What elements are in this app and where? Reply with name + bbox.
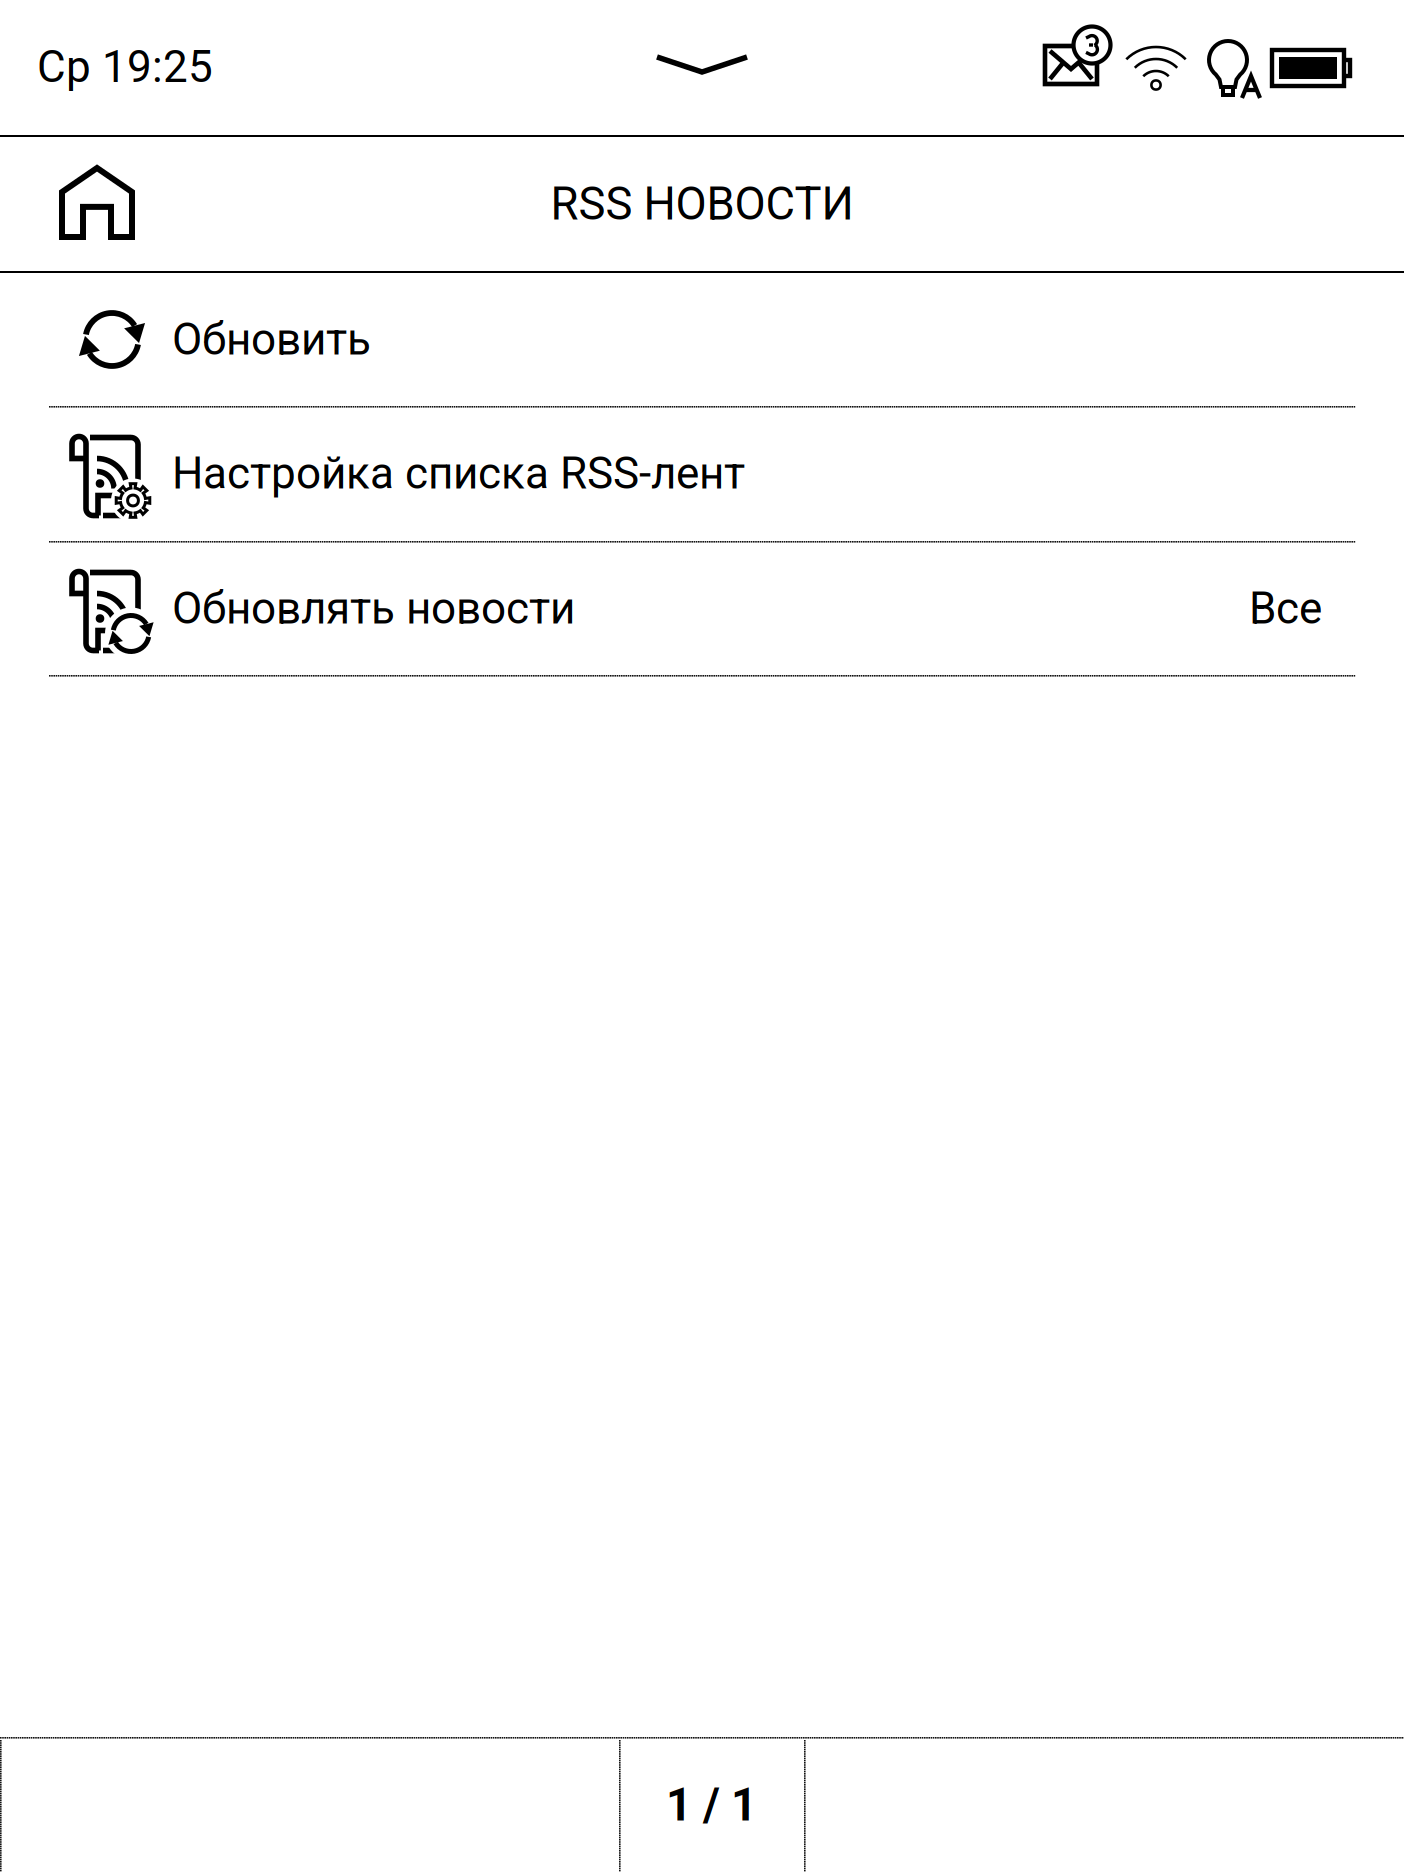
staticText: Ср 19:25 bbox=[37, 41, 213, 93]
staticText: Все bbox=[1249, 583, 1322, 634]
button[interactable]: Home bbox=[29, 136, 165, 272]
staticText: Обновить bbox=[172, 314, 371, 365]
button[interactable]: Open control panel bbox=[627, 20, 777, 110]
button[interactable]: Настройка списка RSS-лент bbox=[0, 406, 1404, 541]
staticText: Обновлять новости bbox=[172, 583, 575, 634]
button[interactable]: Previous page bbox=[0, 1740, 619, 1872]
button[interactable]: Обновить bbox=[0, 273, 1404, 406]
staticText: RSS НОВОСТИ bbox=[550, 177, 853, 230]
button[interactable]: Next page bbox=[805, 1740, 1404, 1872]
staticText: Настройка списка RSS-лент bbox=[172, 448, 745, 499]
staticText: 1 / 1 bbox=[666, 1778, 757, 1831]
button[interactable]: 1 / 1 bbox=[619, 1738, 804, 1872]
button[interactable]: Обновлять новости bbox=[0, 541, 1404, 676]
